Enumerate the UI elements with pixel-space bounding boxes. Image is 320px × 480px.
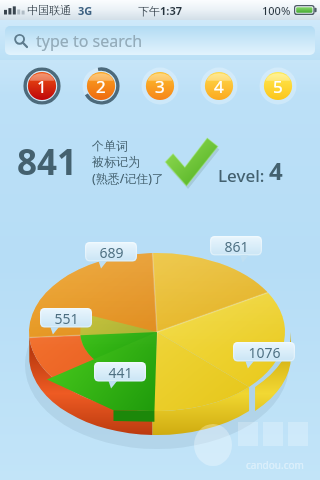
button[interactable]: type to search [5,26,315,55]
staticText: 841 [17,138,78,186]
button[interactable]: Level 4 [200,67,238,105]
staticText: 3G [78,3,93,18]
staticText: Level: [218,164,265,187]
staticText: (熟悉/记住)了 [92,170,165,186]
staticText: 5 [273,75,283,98]
staticText: 689 [99,243,124,262]
staticText: 下午 [138,4,160,18]
staticText: type to search [36,30,143,52]
staticText: 个单词 [92,138,128,153]
staticText: 3 [155,75,165,98]
staticText: candou.com [246,458,304,472]
button[interactable]: Level 1 [23,67,61,105]
button[interactable]: Level 5 [259,67,297,105]
staticText: 441 [108,363,133,382]
staticText: 中国联通 [27,3,71,17]
button[interactable]: Level 2 [82,67,120,105]
staticText: 551 [54,309,79,328]
button[interactable]: Level 3 [141,67,179,105]
staticText: 4 [214,75,224,98]
staticText: 被标记为 [92,154,140,169]
staticText: 2 [96,75,106,98]
staticText: 1 [37,75,47,98]
staticText: 861 [224,237,249,256]
staticText: 4 [269,154,283,187]
staticText: 1076 [248,343,281,362]
staticText: 100% [262,3,291,18]
staticText: 1:37 [160,3,182,18]
